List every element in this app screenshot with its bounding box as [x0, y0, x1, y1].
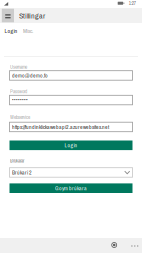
staticText: 1:27: [129, 0, 136, 6]
staticText: Webservice: [10, 114, 30, 121]
staticText: Password: [10, 88, 27, 95]
staticText: Login: [64, 141, 77, 149]
button[interactable]: Misc.: [22, 25, 33, 36]
staticText: ••••••••: [12, 96, 28, 104]
staticText: Goym brúkara: [55, 184, 87, 192]
button[interactable]: More: [129, 238, 141, 253]
staticText: Username: [10, 63, 27, 70]
staticText: https://fundinklickawebapi2.azurewebsite…: [12, 123, 109, 131]
staticText: Stillingar: [19, 10, 45, 21]
staticText: Brúkari 2: [12, 169, 32, 176]
button[interactable]: Brúkari 2: [9, 168, 132, 177]
button[interactable]: Login: [9, 140, 132, 150]
button[interactable]: Sync: [108, 237, 120, 252]
staticText: Misc.: [23, 27, 33, 35]
button[interactable]: Goym brúkara: [9, 183, 132, 193]
staticText: Brúkarar: [10, 157, 24, 164]
button[interactable]: Menu: [2, 9, 14, 22]
button[interactable]: Login: [4, 25, 18, 36]
staticText: Login: [4, 27, 17, 35]
staticText: demo@demo.fo: [12, 72, 48, 79]
